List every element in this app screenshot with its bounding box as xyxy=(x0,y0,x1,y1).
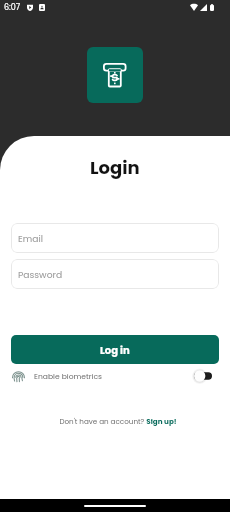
button[interactable]: Password xyxy=(11,259,219,289)
staticText: Login xyxy=(90,155,140,180)
button[interactable]: Don't have an account? Sign up! xyxy=(51,414,185,428)
staticText: Password xyxy=(18,268,63,281)
staticText: Log in xyxy=(100,343,130,357)
button[interactable]: Enable biometrics xyxy=(12,369,103,383)
staticText: Email xyxy=(18,232,43,245)
button[interactable]: Log in xyxy=(11,335,219,364)
button[interactable]: Enable biometrics toggle xyxy=(194,370,212,382)
button[interactable]: Email xyxy=(11,223,219,253)
staticText: Enable biometrics xyxy=(34,371,103,382)
staticText: Don't have an account? Sign up! xyxy=(59,416,177,426)
staticText: 6:07 xyxy=(4,2,21,13)
